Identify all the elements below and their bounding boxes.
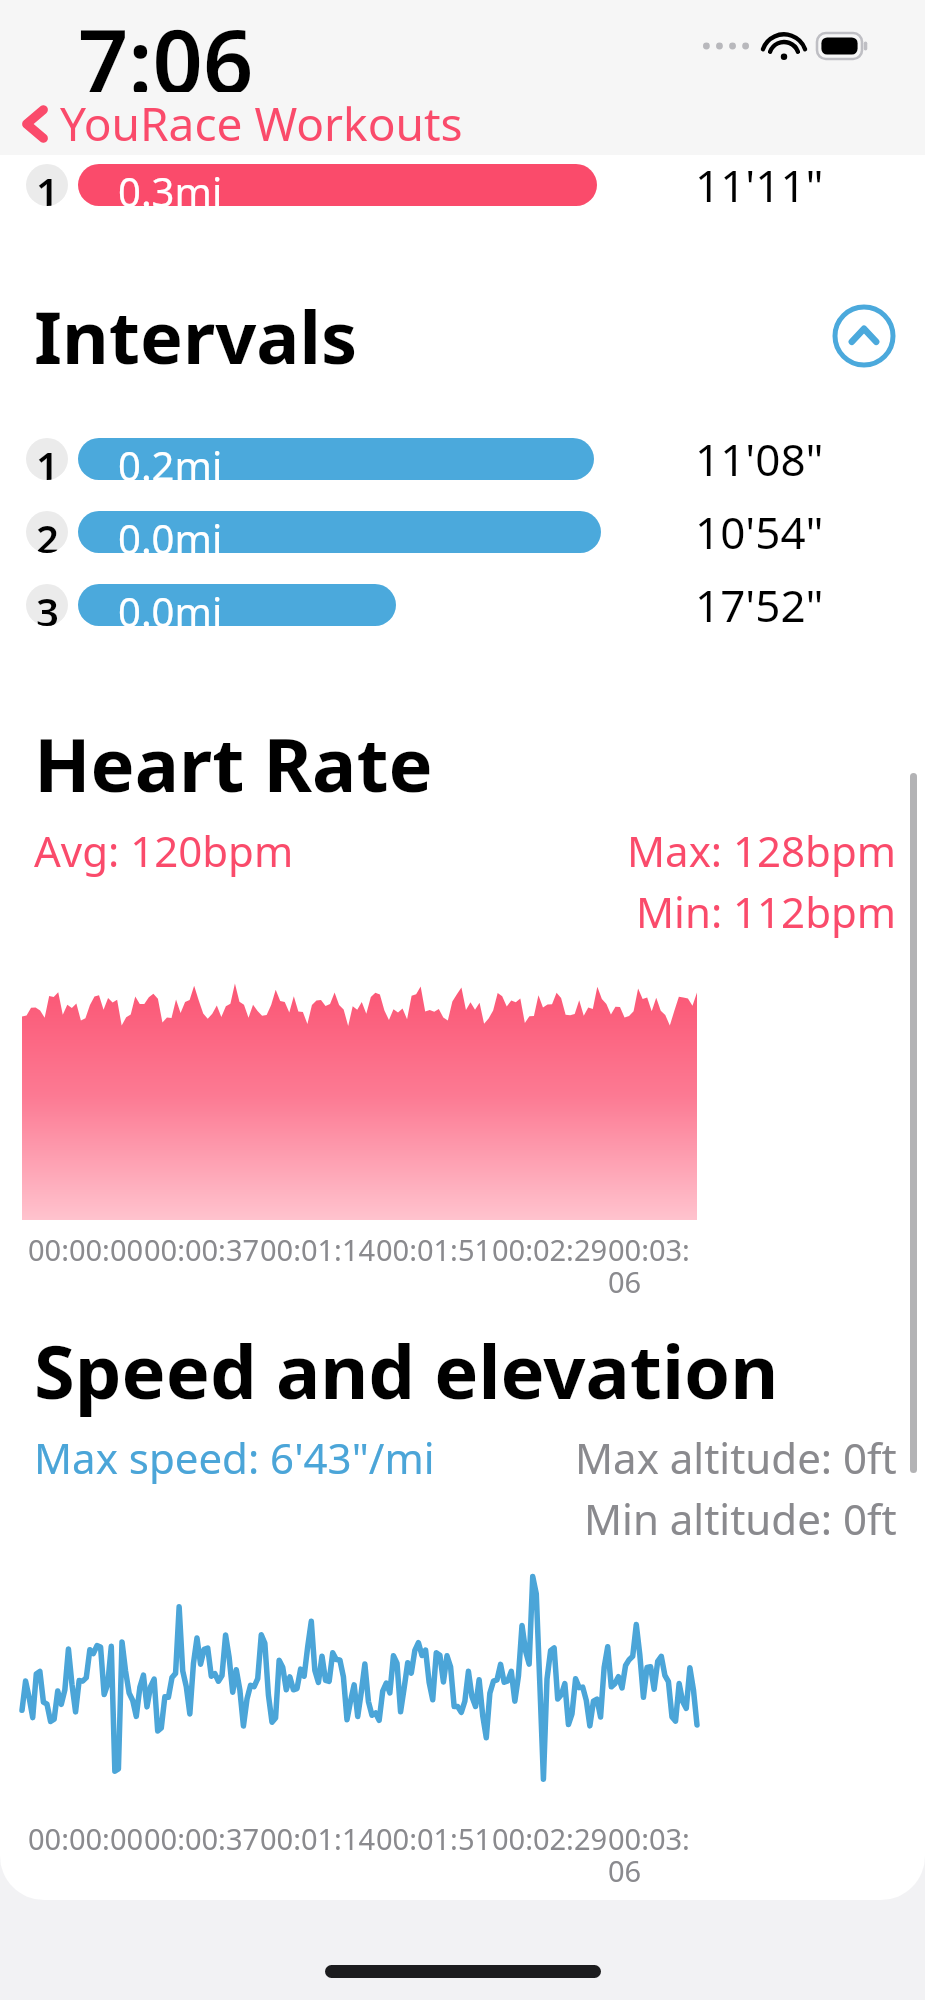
staticText: 11'11": [695, 155, 824, 215]
staticText: Heart Rate: [34, 713, 433, 814]
staticText: 00:00:00: [28, 1819, 144, 1858]
staticText: 0.0mi: [118, 584, 223, 626]
staticText: 7:06: [78, 0, 254, 92]
staticText: 00:03:06: [608, 1230, 703, 1302]
staticText: 00:00:37: [144, 1819, 260, 1858]
staticText: 17'52": [695, 575, 824, 635]
button[interactable]: 3: [26, 575, 899, 635]
staticText: Max altitude: 0ft: [575, 1429, 897, 1486]
staticText: 00:02:29: [492, 1819, 608, 1858]
staticText: 1: [36, 164, 59, 206]
staticText: 2: [36, 511, 59, 553]
staticText: Max speed: 6'43"/mi: [34, 1429, 435, 1486]
staticText: 00:03:06: [608, 1819, 703, 1891]
staticText: 0.3mi: [118, 164, 223, 206]
staticText: 00:01:14: [260, 1819, 376, 1858]
staticText: Intervals: [34, 287, 358, 385]
staticText: 10'54": [695, 502, 824, 562]
staticText: 00:01:51: [376, 1230, 492, 1269]
staticText: 00:00:00: [28, 1230, 144, 1269]
button[interactable]: 1: [26, 155, 899, 215]
button[interactable]: 2: [26, 502, 899, 562]
button[interactable]: Collapse intervals: [833, 305, 895, 367]
staticText: Speed and elevation: [34, 1320, 779, 1421]
staticText: 0.0mi: [118, 511, 223, 553]
staticText: 1: [36, 438, 59, 480]
staticText: 00:01:51: [376, 1819, 492, 1858]
staticText: YouRace Workouts: [60, 92, 463, 155]
staticText: 11'08": [695, 429, 824, 489]
staticText: Min altitude: 0ft: [584, 1490, 897, 1547]
button[interactable]: YouRace Workouts: [20, 92, 463, 155]
staticText: Avg: 120bpm: [34, 822, 294, 879]
staticText: Max: 128bpm: [627, 822, 897, 879]
staticText: 00:02:29: [492, 1230, 608, 1269]
button[interactable]: 1: [26, 429, 899, 489]
staticText: 3: [36, 584, 59, 626]
staticText: Min: 112bpm: [636, 883, 897, 940]
staticText: 00:01:14: [260, 1230, 376, 1269]
staticText: 0.2mi: [118, 438, 223, 480]
staticText: 00:00:37: [144, 1230, 260, 1269]
